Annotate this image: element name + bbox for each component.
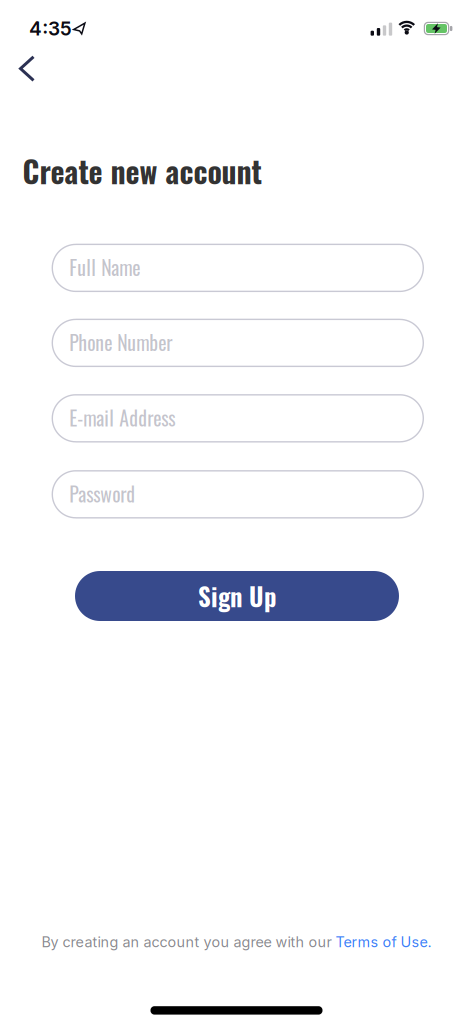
- button[interactable]: Sign Up: [75, 571, 399, 621]
- staticText: Create new account: [23, 149, 262, 193]
- button[interactable]: E-mail Address: [52, 395, 424, 442]
- button[interactable]: Terms of Use: [335, 933, 427, 951]
- staticText: Sign Up: [198, 578, 276, 614]
- staticText: Full Name: [69, 252, 140, 282]
- staticText: Terms of Use: [335, 933, 427, 951]
- staticText: By creating an account you agree with ou…: [41, 933, 335, 951]
- button[interactable]: [11, 48, 43, 89]
- button[interactable]: Password: [52, 471, 424, 518]
- button[interactable]: Full Name: [52, 244, 424, 291]
- staticText: E-mail Address: [69, 403, 175, 432]
- button[interactable]: Phone Number: [52, 319, 424, 366]
- staticText: Password: [69, 479, 135, 508]
- staticText: .: [427, 933, 431, 951]
- staticText: Phone Number: [69, 327, 172, 357]
- staticText: 4:35: [29, 17, 72, 40]
